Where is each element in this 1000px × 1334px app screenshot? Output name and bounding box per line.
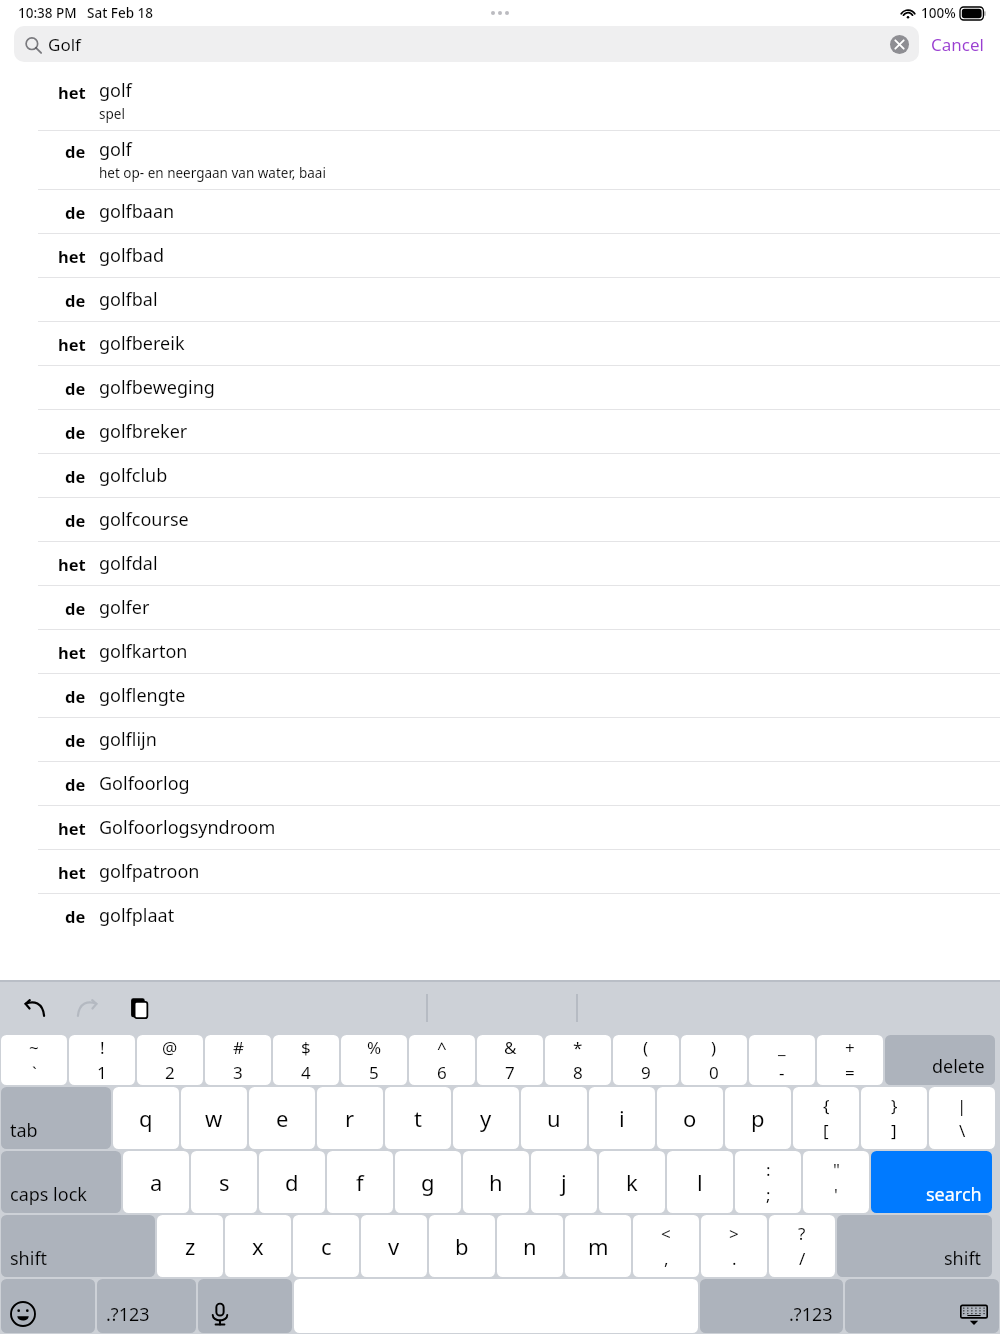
button[interactable]: Key xyxy=(845,1279,999,1333)
button[interactable]: caps lock xyxy=(1,1151,121,1213)
button[interactable]: de xyxy=(0,586,1000,629)
button[interactable]: v xyxy=(361,1215,427,1277)
button[interactable]: het xyxy=(0,630,1000,673)
staticText: golflengte xyxy=(99,683,186,708)
button[interactable]: Golf xyxy=(14,26,919,62)
staticText: golfbal xyxy=(99,287,158,312)
button[interactable]: # xyxy=(205,1035,271,1085)
button[interactable]: d xyxy=(259,1151,325,1213)
button[interactable]: } xyxy=(861,1087,927,1149)
staticText: b xyxy=(455,1231,469,1261)
button[interactable]: l xyxy=(667,1151,733,1213)
button[interactable]: r xyxy=(317,1087,383,1149)
button[interactable]: tab xyxy=(1,1087,111,1149)
button[interactable]: : xyxy=(735,1151,801,1213)
button[interactable]: de xyxy=(0,498,1000,541)
button[interactable]: shift xyxy=(837,1215,992,1277)
staticText: golfplaat xyxy=(99,903,175,928)
button[interactable]: ) xyxy=(681,1035,747,1085)
button[interactable]: _ xyxy=(749,1035,815,1085)
button[interactable]: het xyxy=(0,542,1000,585)
staticText: delete xyxy=(932,1054,985,1079)
button[interactable]: de xyxy=(0,894,1000,937)
button[interactable]: z xyxy=(157,1215,223,1277)
button[interactable]: de xyxy=(0,190,1000,233)
button[interactable]: Paste xyxy=(122,991,156,1025)
button[interactable]: p xyxy=(725,1087,791,1149)
staticText: ^ xyxy=(437,1036,447,1059)
button[interactable]: het xyxy=(0,234,1000,277)
button[interactable]: < xyxy=(633,1215,699,1277)
button[interactable]: ^ xyxy=(409,1035,475,1085)
button[interactable]: * xyxy=(545,1035,611,1085)
button[interactable]: het xyxy=(0,850,1000,893)
button[interactable]: de xyxy=(0,131,1000,189)
button[interactable]: o xyxy=(657,1087,723,1149)
button[interactable]: de xyxy=(0,366,1000,409)
button[interactable]: | xyxy=(929,1087,995,1149)
button[interactable]: & xyxy=(477,1035,543,1085)
button[interactable]: de xyxy=(0,410,1000,453)
button[interactable]: y xyxy=(453,1087,519,1149)
button[interactable]: { xyxy=(793,1087,859,1149)
button[interactable]: Clear search xyxy=(890,35,909,54)
button[interactable]: Key xyxy=(198,1279,292,1333)
button[interactable]: n xyxy=(497,1215,563,1277)
button[interactable]: ~ xyxy=(1,1035,67,1085)
button[interactable]: h xyxy=(463,1151,529,1213)
button[interactable]: b xyxy=(429,1215,495,1277)
button[interactable]: ( xyxy=(613,1035,679,1085)
button[interactable]: het xyxy=(0,806,1000,849)
staticText: golfkarton xyxy=(99,639,188,664)
button[interactable]: @ xyxy=(137,1035,203,1085)
button[interactable]: shift xyxy=(1,1215,155,1277)
button[interactable]: % xyxy=(341,1035,407,1085)
staticText: k xyxy=(626,1167,638,1197)
button[interactable]: de xyxy=(0,762,1000,805)
button[interactable]: Undo xyxy=(18,991,52,1025)
staticText: / xyxy=(799,1247,806,1270)
other: Emoji xyxy=(10,1301,36,1327)
button[interactable]: + xyxy=(817,1035,883,1085)
staticText: Sat Feb 18 xyxy=(87,4,154,22)
staticText: | xyxy=(957,1094,967,1117)
button[interactable]: delete xyxy=(885,1035,995,1085)
button[interactable]: de xyxy=(0,454,1000,497)
button[interactable]: s xyxy=(191,1151,257,1213)
button[interactable]: ! xyxy=(69,1035,135,1085)
button[interactable]: ? xyxy=(769,1215,835,1277)
button[interactable]: .?123 xyxy=(97,1279,196,1333)
button[interactable]: x xyxy=(225,1215,291,1277)
button[interactable]: q xyxy=(113,1087,179,1149)
button[interactable]: u xyxy=(521,1087,587,1149)
button[interactable]: Cancel xyxy=(919,33,986,56)
button[interactable]: search xyxy=(871,1151,992,1213)
button[interactable]: c xyxy=(293,1215,359,1277)
button[interactable]: f xyxy=(327,1151,393,1213)
button[interactable]: het xyxy=(0,72,1000,130)
button[interactable]: " xyxy=(803,1151,869,1213)
staticText: 100% xyxy=(921,4,956,22)
staticText: ' xyxy=(834,1183,838,1206)
button[interactable]: de xyxy=(0,278,1000,321)
button[interactable]: t xyxy=(385,1087,451,1149)
button[interactable]: de xyxy=(0,674,1000,717)
button[interactable]: de xyxy=(0,718,1000,761)
button[interactable]: Key xyxy=(1,1279,95,1333)
button[interactable]: $ xyxy=(273,1035,339,1085)
staticText: de xyxy=(65,289,86,311)
button[interactable]: g xyxy=(395,1151,461,1213)
button[interactable]: m xyxy=(565,1215,631,1277)
button[interactable]: Redo xyxy=(70,991,104,1025)
button[interactable]: a xyxy=(123,1151,189,1213)
button[interactable]: w xyxy=(181,1087,247,1149)
button[interactable]: i xyxy=(589,1087,655,1149)
other: Hide keyboard xyxy=(959,1303,989,1327)
button[interactable]: > xyxy=(701,1215,767,1277)
button[interactable]: k xyxy=(599,1151,665,1213)
button[interactable]: j xyxy=(531,1151,597,1213)
button[interactable]: het xyxy=(0,322,1000,365)
button[interactable]: .?123 xyxy=(700,1279,843,1333)
button[interactable]: e xyxy=(249,1087,315,1149)
